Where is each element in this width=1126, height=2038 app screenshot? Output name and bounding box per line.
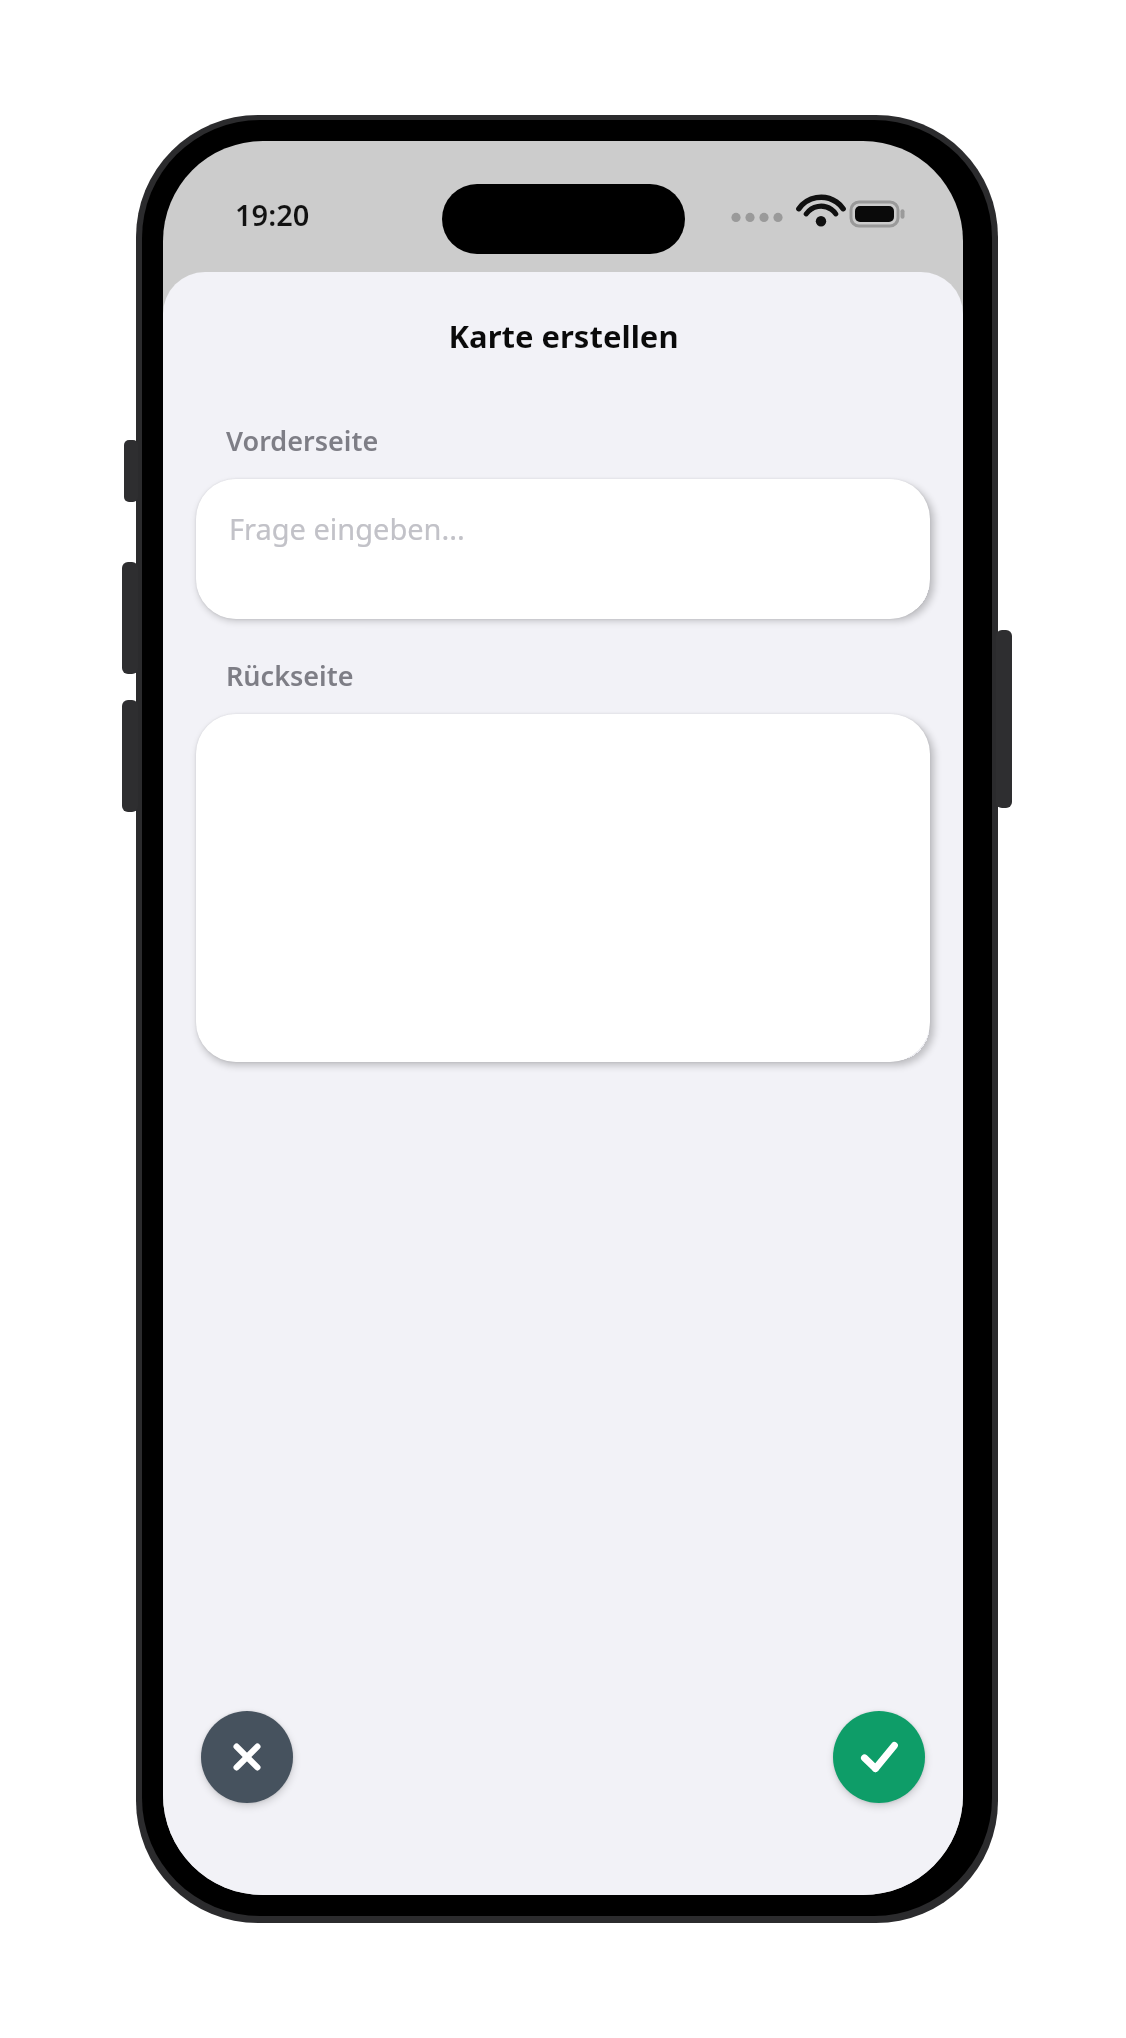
staticText: Vorderseite	[226, 422, 379, 459]
staticText: 19:20	[235, 195, 310, 234]
button[interactable]: Speichern	[833, 1711, 925, 1803]
staticText: Frage eingeben...	[229, 509, 465, 548]
staticText: Rückseite	[226, 657, 354, 694]
button[interactable]: Frage eingeben...	[196, 479, 930, 619]
button[interactable]: Abbrechen	[201, 1711, 293, 1803]
staticText: Karte erstellen	[448, 315, 679, 357]
